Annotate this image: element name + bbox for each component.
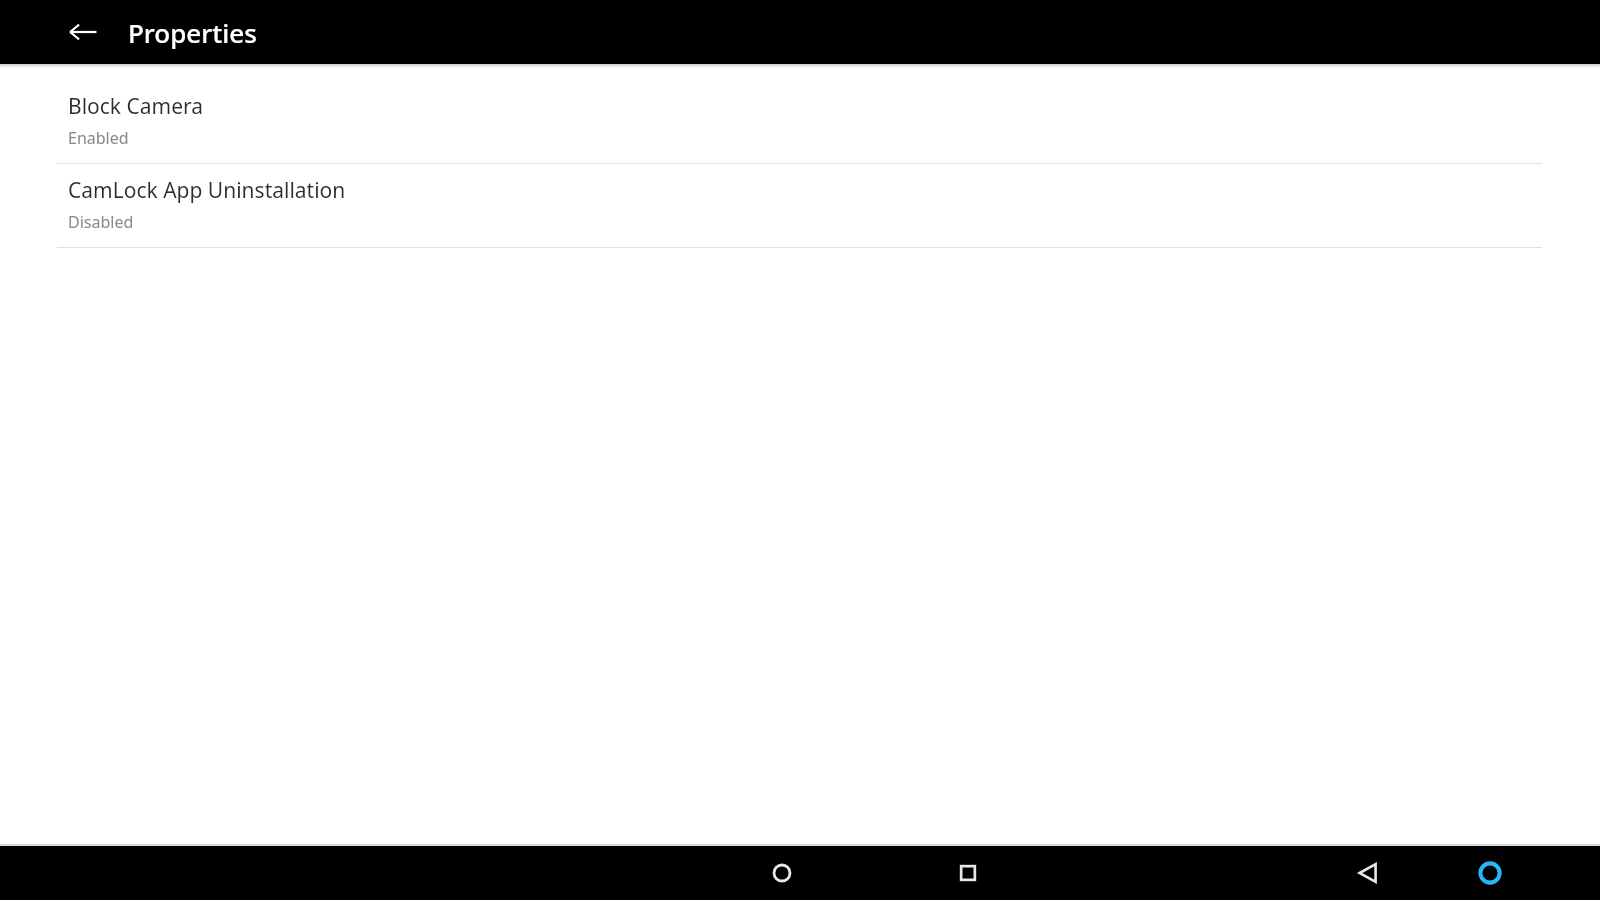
- staticText: CamLock App Uninstallation: [68, 176, 346, 205]
- button[interactable]: Assistant: [1460, 846, 1520, 900]
- button[interactable]: Recent apps: [938, 846, 998, 900]
- button[interactable]: CamLock App Uninstallation: [0, 164, 1600, 247]
- button[interactable]: Block Camera: [0, 80, 1600, 163]
- staticText: Disabled: [68, 211, 134, 233]
- staticText: Enabled: [68, 127, 129, 149]
- button[interactable]: Back: [568, 846, 1600, 900]
- button[interactable]: Back: [55, 4, 111, 60]
- staticText: Block Camera: [68, 92, 204, 121]
- staticText: Properties: [128, 15, 257, 50]
- button[interactable]: Home: [752, 846, 812, 900]
